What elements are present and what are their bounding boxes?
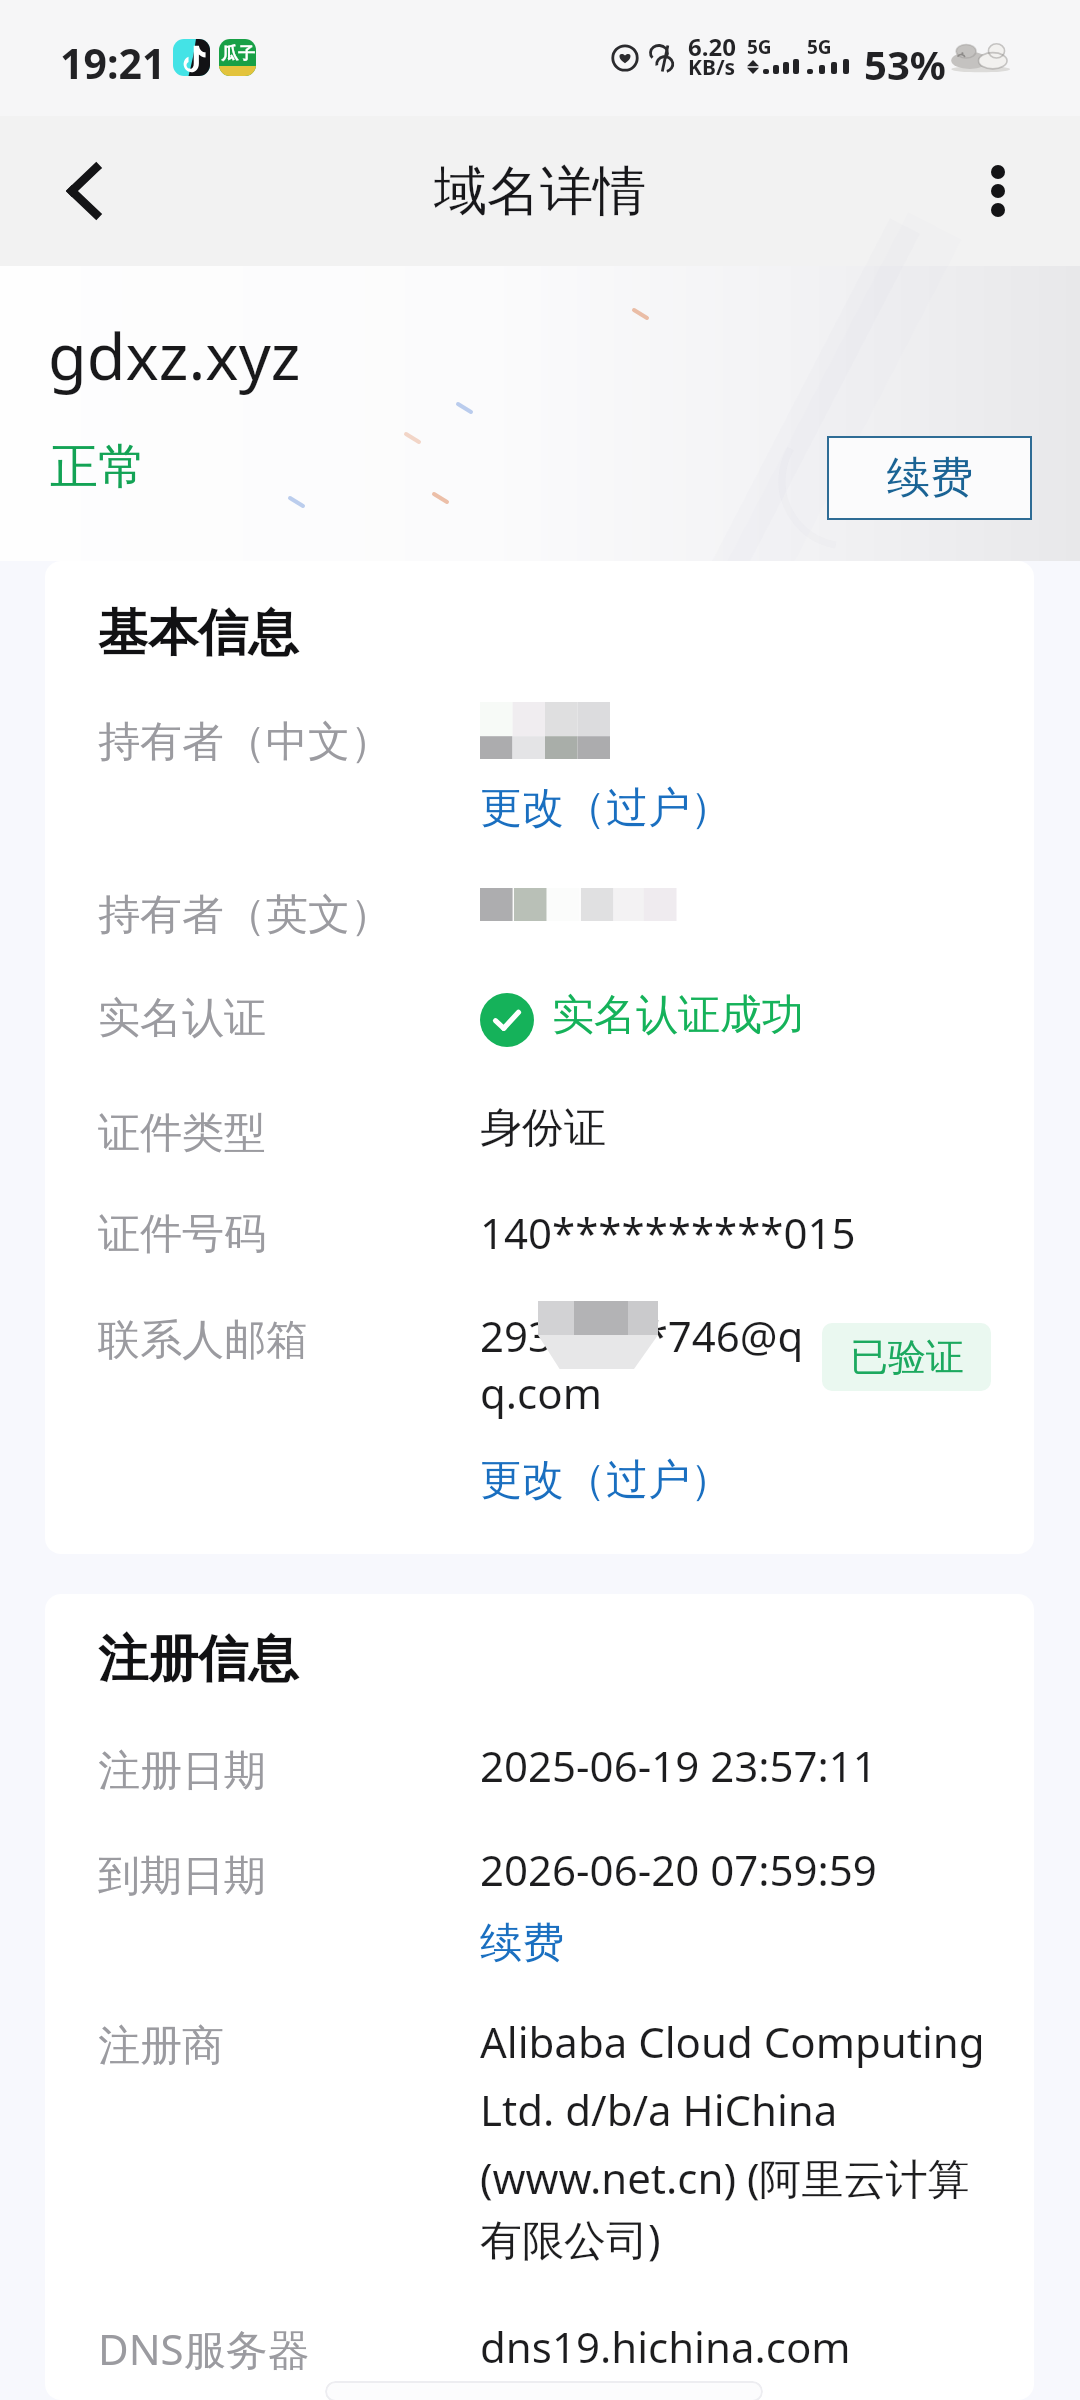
staticText: 续费 — [887, 451, 973, 505]
staticText: Alibaba Cloud Computing — [480, 2013, 985, 2070]
button[interactable] — [325, 2381, 763, 2400]
button[interactable]: 续费 — [480, 1917, 564, 1970]
staticText: 6.20 — [688, 30, 736, 63]
staticText: 2025-06-19 23:57:11 — [480, 1737, 877, 1794]
staticText: 实名认证 — [98, 992, 266, 1045]
staticText: 持有者（英文） — [98, 889, 392, 942]
button[interactable]: Back — [0, 116, 160, 266]
staticText: 293*****746@q — [480, 1307, 804, 1364]
button[interactable]: 更改（过户） — [480, 1454, 732, 1507]
staticText: 基本信息 — [98, 602, 298, 665]
staticText: 正常 — [50, 437, 146, 497]
staticText: KB/s — [688, 53, 736, 82]
staticText: gdxz.xyz — [48, 313, 301, 399]
staticText: 瓜子 — [221, 43, 255, 64]
staticText: 证件类型 — [98, 1107, 266, 1160]
staticText: 到期日期 — [98, 1850, 266, 1903]
staticText: 联系人邮箱 — [98, 1314, 308, 1367]
staticText: 19:21 — [60, 35, 166, 91]
button[interactable]: More options — [916, 116, 1080, 266]
staticText: 实名认证成功 — [552, 989, 804, 1042]
staticText: 持有者（中文） — [98, 716, 392, 769]
staticText: 有限公司) — [480, 2210, 661, 2267]
staticText: 已验证 — [850, 1333, 964, 1381]
staticText: 2026-06-20 07:59:59 — [480, 1841, 877, 1898]
staticText: DNS服务器 — [98, 2320, 310, 2377]
staticText: 注册日期 — [98, 1745, 266, 1798]
staticText: 注册信息 — [98, 1628, 298, 1691]
staticText: 53% — [864, 37, 946, 91]
staticText: 5G — [807, 34, 832, 60]
staticText: q.com — [480, 1364, 602, 1421]
button[interactable]: 已验证 — [822, 1323, 991, 1391]
staticText: (www.net.cn) (阿里云计算 — [480, 2149, 970, 2206]
button[interactable]: 更改（过户） — [480, 782, 732, 835]
staticText: 证件号码 — [98, 1208, 266, 1261]
staticText: 注册商 — [98, 2020, 224, 2073]
staticText: dns19.hichina.com — [480, 2318, 851, 2375]
staticText: 5G — [747, 34, 772, 60]
staticText: 域名详情 — [434, 158, 646, 225]
staticText: 140**********015 — [480, 1204, 856, 1261]
staticText: Ltd. d/b/a HiChina — [480, 2081, 838, 2138]
button[interactable]: 续费 — [827, 436, 1032, 520]
staticText: 身份证 — [480, 1102, 606, 1155]
